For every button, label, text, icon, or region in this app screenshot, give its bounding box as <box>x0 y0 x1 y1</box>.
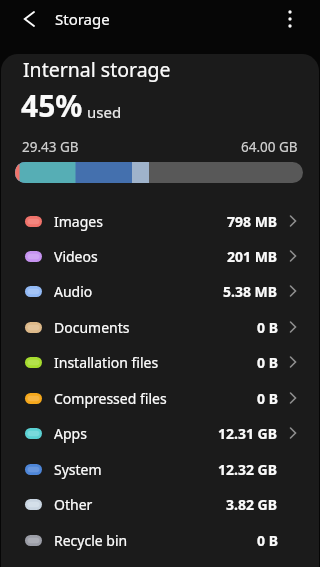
staticText: 5.38 MB <box>223 282 278 301</box>
staticText: 201 MB <box>227 247 278 266</box>
staticText: Audio <box>54 282 93 301</box>
button[interactable]: Recycle bin <box>1 522 319 558</box>
staticText: 29.43 GB <box>22 138 79 156</box>
staticText: 3.82 GB <box>226 495 278 514</box>
staticText: 0 B <box>257 389 278 408</box>
staticText: Other <box>54 495 93 514</box>
button[interactable]: Images <box>1 203 319 239</box>
button[interactable]: Compressed files <box>1 380 319 416</box>
staticText: 0 B <box>257 318 278 337</box>
staticText: Internal storage <box>23 56 171 83</box>
staticText: Recycle bin <box>54 531 128 550</box>
staticText: 12.31 GB <box>218 424 278 443</box>
staticText: Compressed files <box>54 389 167 408</box>
button[interactable] <box>270 0 310 38</box>
staticText: System <box>54 460 102 479</box>
staticText: 45% <box>21 85 83 126</box>
button[interactable] <box>9 0 49 38</box>
staticText: Apps <box>54 424 87 443</box>
staticText: used <box>87 102 122 122</box>
button[interactable]: Other <box>1 486 319 522</box>
button[interactable]: Apps <box>1 415 319 451</box>
staticText: Documents <box>54 318 130 337</box>
button[interactable]: Videos <box>1 238 319 274</box>
staticText: 64.00 GB <box>241 138 298 156</box>
button[interactable]: Audio <box>1 273 319 309</box>
staticText: Storage <box>55 9 110 29</box>
button[interactable]: System <box>1 451 319 487</box>
staticText: 0 B <box>257 353 278 372</box>
button[interactable]: Installation files <box>1 344 319 380</box>
staticText: 0 B <box>257 531 278 550</box>
staticText: 798 MB <box>227 212 278 231</box>
staticText: Videos <box>54 247 98 266</box>
button[interactable]: Documents <box>1 309 319 345</box>
staticText: Images <box>54 212 103 231</box>
staticText: Installation files <box>54 353 159 372</box>
staticText: 12.32 GB <box>218 460 278 479</box>
